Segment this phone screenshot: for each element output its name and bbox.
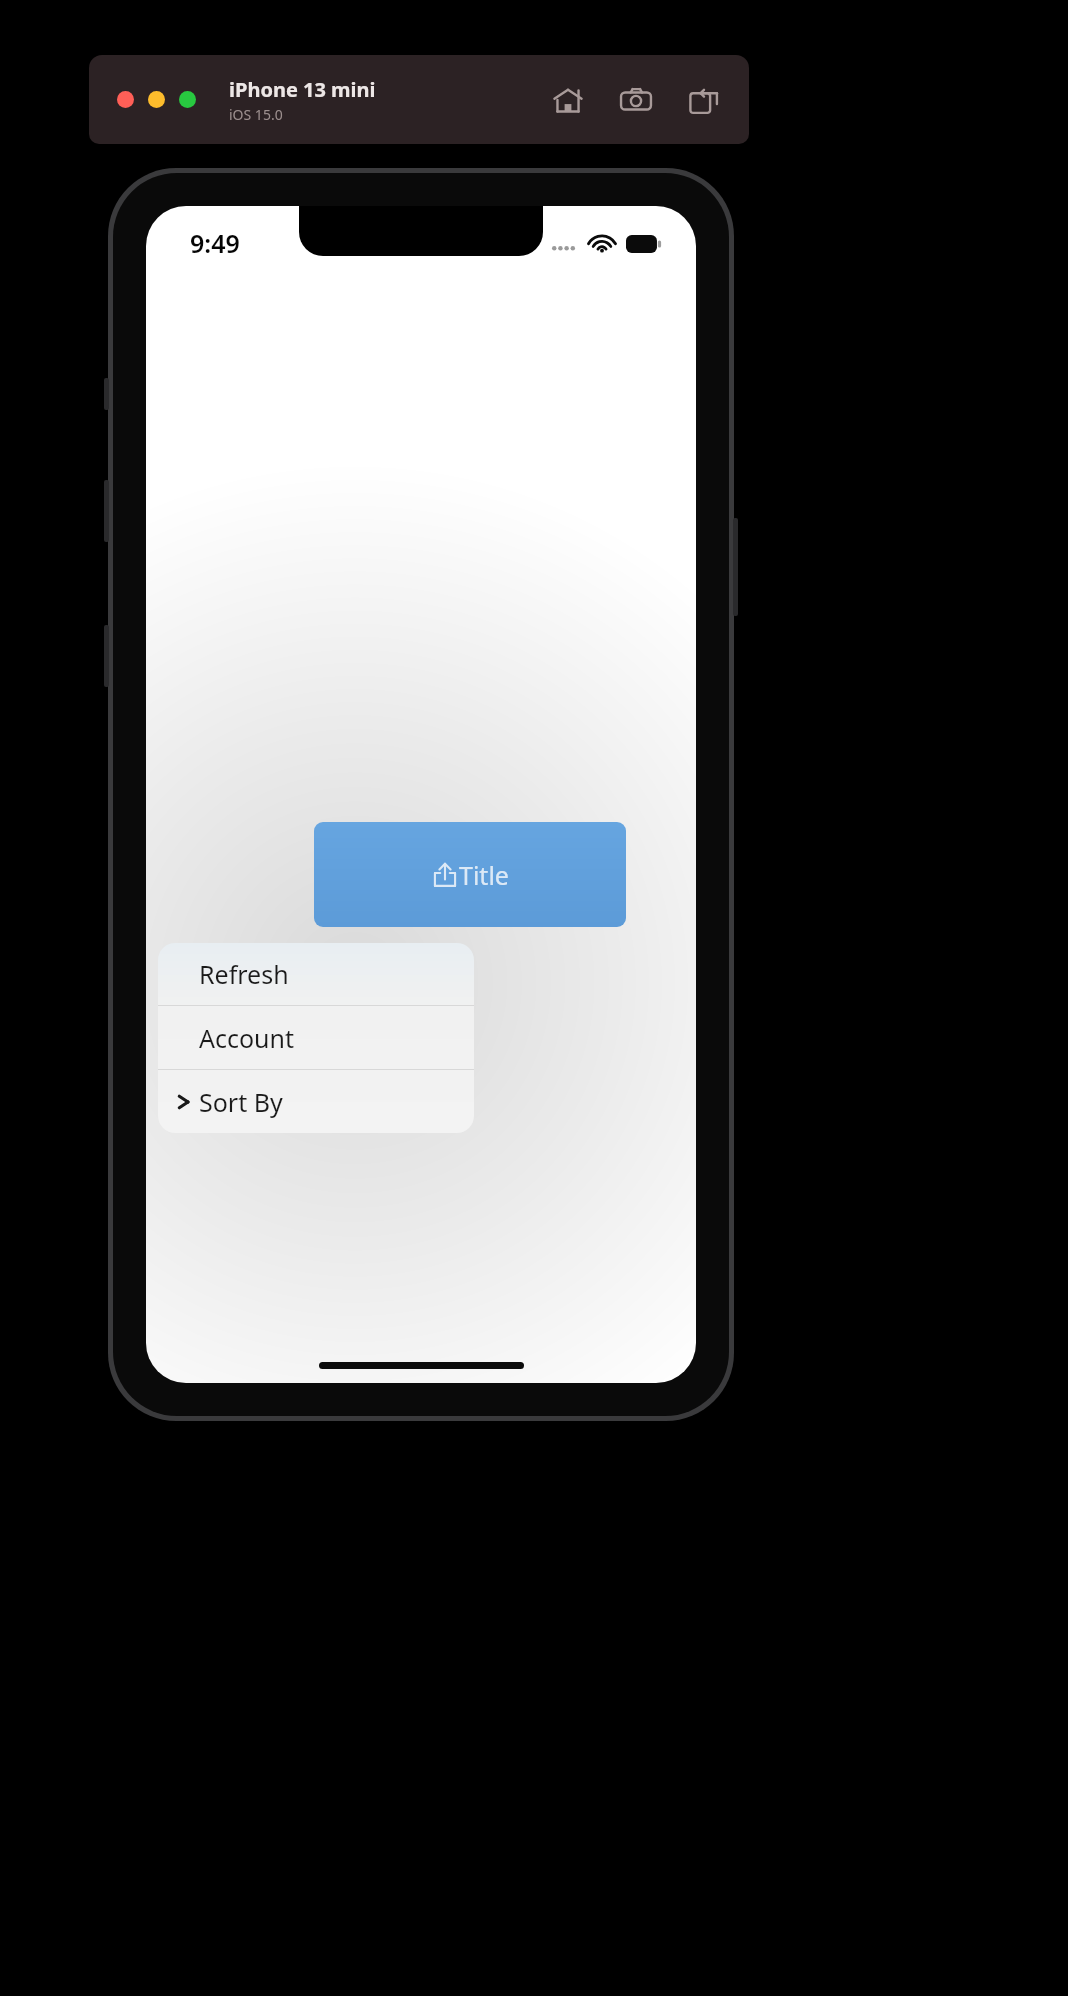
button[interactable]: Refresh — [158, 943, 474, 1005]
staticText: 9:49 — [190, 226, 240, 260]
button[interactable]: Rotate — [687, 83, 721, 117]
button[interactable]: Close — [117, 91, 134, 108]
button[interactable]: Sort By — [158, 1070, 474, 1133]
button[interactable]: Maximize — [179, 91, 196, 108]
button[interactable]: Title — [314, 822, 626, 927]
button[interactable]: Minimize — [148, 91, 165, 108]
staticText: iPhone 13 mini — [229, 76, 376, 103]
staticText: iOS 15.0 — [229, 105, 283, 124]
button[interactable]: Account — [158, 1006, 474, 1069]
button[interactable]: Home — [551, 83, 585, 117]
staticText: Account — [199, 1021, 295, 1055]
staticText: Refresh — [199, 957, 289, 991]
staticText: Title — [459, 858, 509, 892]
staticText: Sort By — [199, 1085, 283, 1119]
button[interactable]: Screenshot — [619, 83, 653, 117]
